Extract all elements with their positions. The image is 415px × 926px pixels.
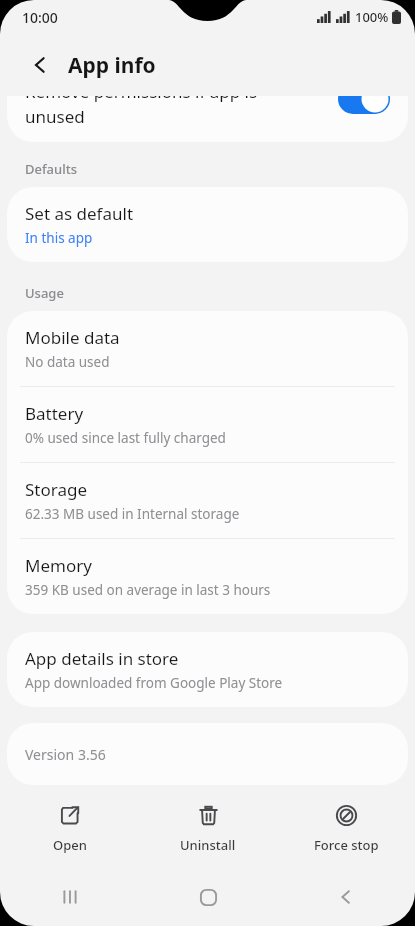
button[interactable]: Battery <box>7 387 408 462</box>
staticText: App details in store <box>25 647 179 670</box>
button[interactable]: Storage <box>7 463 408 538</box>
button[interactable]: Uninstall <box>139 790 277 868</box>
staticText: Defaults <box>25 160 78 178</box>
staticText: Battery <box>25 402 84 425</box>
staticText: 0% used since last fully charged <box>25 429 226 447</box>
button[interactable]: Mobile data <box>7 311 408 386</box>
button[interactable]: Remove permissions if app is <box>7 96 408 142</box>
staticText: Open <box>53 836 87 854</box>
staticText: Uninstall <box>180 836 236 854</box>
staticText: 10:00 <box>22 8 58 27</box>
button[interactable]: Memory <box>7 539 408 614</box>
staticText: 359 KB used on average in last 3 hours <box>25 581 271 599</box>
staticText: App downloaded from Google Play Store <box>25 674 283 692</box>
staticText: Usage <box>25 284 64 302</box>
button[interactable]: Home <box>139 868 277 926</box>
button[interactable]: Back <box>20 45 60 85</box>
staticText: In this app <box>25 229 93 247</box>
staticText: Force stop <box>314 836 379 854</box>
staticText: Storage <box>25 478 88 501</box>
staticText: Mobile data <box>25 326 120 349</box>
staticText: No data used <box>25 353 110 371</box>
staticText: Remove permissions if app is <box>25 96 258 103</box>
button[interactable]: Open <box>0 790 139 868</box>
button[interactable]: Force stop <box>277 790 415 868</box>
staticText: Set as default <box>25 202 134 225</box>
staticText: 100% <box>355 8 389 26</box>
staticText: 62.33 MB used in Internal storage <box>25 505 240 523</box>
button[interactable]: Set as default <box>7 187 408 262</box>
button[interactable]: Back <box>277 868 415 926</box>
staticText: unused <box>25 105 85 126</box>
button[interactable]: Recents <box>0 868 139 926</box>
button[interactable]: Remove permissions toggle <box>338 96 390 114</box>
staticText: App info <box>68 51 156 80</box>
staticText: Memory <box>25 554 92 577</box>
button[interactable]: App details in store <box>7 632 408 707</box>
staticText: Version 3.56 <box>25 745 106 764</box>
